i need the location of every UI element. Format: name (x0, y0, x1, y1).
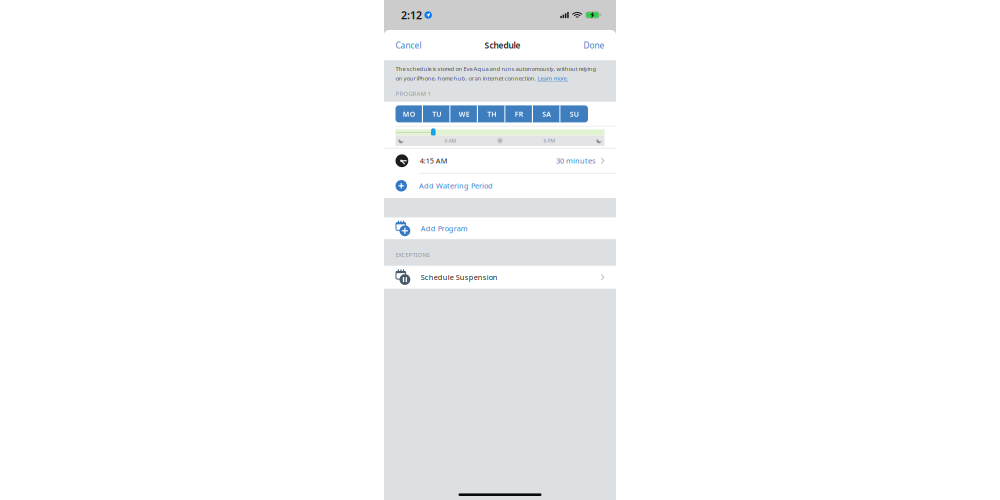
button[interactable]: Schedule Suspension (384, 266, 616, 289)
staticText: SA (542, 109, 551, 119)
staticText: EXCEPTIONS (395, 251, 429, 259)
button[interactable]: Add Program (384, 217, 616, 239)
button[interactable]: Add Watering Period (384, 174, 616, 198)
button[interactable]: SU (560, 105, 588, 122)
staticText: SU (570, 109, 579, 119)
staticText: Add Program (421, 224, 468, 233)
button[interactable]: Done (575, 31, 616, 60)
staticText: Schedule (484, 40, 520, 51)
staticText: 4:15 AM (420, 156, 448, 166)
staticText: 6 AM (444, 137, 456, 144)
staticText: Schedule Suspension (421, 272, 498, 282)
button[interactable]: Cancel (384, 31, 429, 60)
staticText: Add Watering Period (419, 181, 493, 191)
staticText: 30 minutes (556, 156, 596, 166)
button[interactable]: WE (450, 105, 478, 122)
staticText: on your iPhone, home hub, or an internet… (395, 74, 537, 82)
button[interactable]: TU (423, 105, 450, 122)
button[interactable]: SA (533, 105, 560, 122)
button[interactable]: FR (505, 105, 533, 122)
staticText: Cancel (395, 40, 421, 51)
button[interactable]: MO (395, 105, 423, 122)
staticText: PROGRAM 1 (395, 89, 430, 97)
staticText: 2:12 (401, 8, 422, 22)
staticText: FR (515, 109, 524, 119)
staticText: WE (459, 109, 470, 119)
staticText: The schedule is stored on Eve Aqua and r… (395, 65, 596, 73)
staticText: TH (487, 109, 496, 119)
staticText: MO (403, 109, 416, 119)
staticText: 6 PM (543, 137, 555, 144)
button[interactable]: TH (478, 105, 505, 122)
staticText: Done (583, 40, 604, 51)
button[interactable]: 4:15 AM (384, 149, 616, 173)
staticText: TU (432, 109, 441, 119)
staticText: Learn more. (537, 74, 568, 82)
